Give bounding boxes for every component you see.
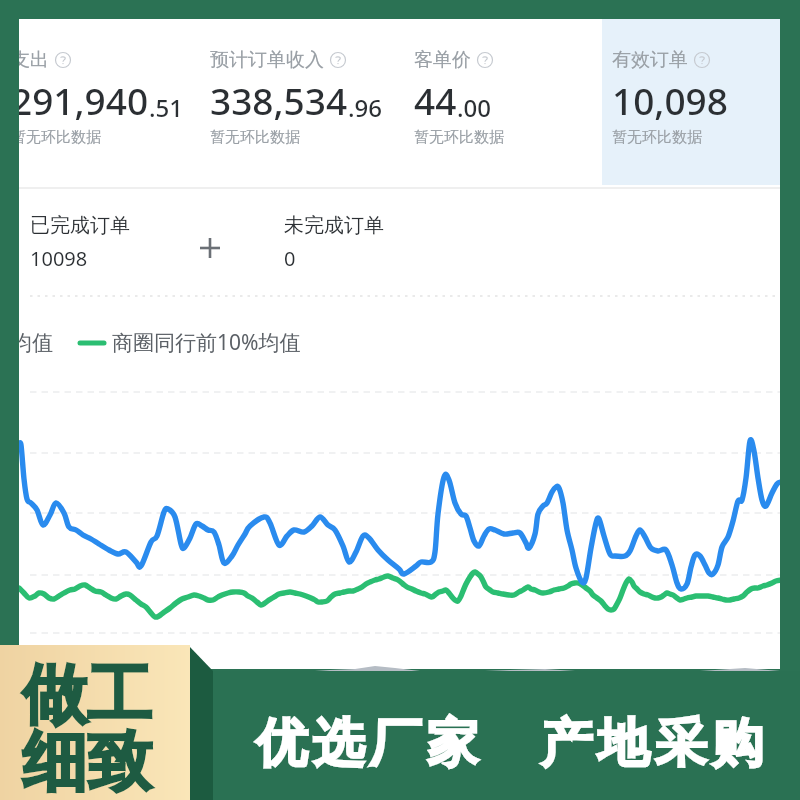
staticText: 338,534 [210,75,348,125]
other: More info [329,51,347,69]
button[interactable]: 均值 [19,328,301,357]
staticText: 10098 [30,245,88,272]
button[interactable]: 优选厂家 产地采购 [213,671,800,800]
staticText: 291,940 [19,75,149,125]
staticText: 44 [414,75,457,125]
staticText: 未完成订单 [284,213,384,238]
other: More info [476,51,494,69]
staticText: .00 [457,91,491,124]
staticText: 暂无环比数据 [414,128,504,147]
staticText: .51 [149,91,183,124]
button[interactable]: 已完成订单 [30,213,130,272]
staticText: 已完成订单 [30,213,130,238]
staticText: 暂无环比数据 [210,128,300,147]
staticText: 支出 [19,48,49,72]
staticText: 暂无环比数据 [19,128,101,147]
staticText: 商圈同行前10%均值 [112,328,301,357]
staticText: 有效订单 [612,48,688,72]
button[interactable]: 预计订单收入 [210,48,382,147]
staticText: 均值 [19,330,53,356]
button[interactable]: 客单价 [414,48,504,147]
staticText: 10,098 [612,75,728,125]
button[interactable]: 未完成订单 [284,213,384,272]
other: Sum [195,233,225,263]
staticText: 做工 [22,654,152,736]
other: More info [54,51,72,69]
staticText: 细致 [22,721,152,800]
staticText: 0 [284,245,296,272]
staticText: 优选厂家 产地采购 [253,705,766,776]
button[interactable]: 有效订单 [612,48,728,147]
staticText: .96 [348,91,382,124]
button[interactable]: 支出 [19,48,183,147]
other: More info [693,51,711,69]
staticText: 预计订单收入 [210,48,324,72]
staticText: 客单价 [414,48,471,72]
button[interactable]: 做工 [0,645,190,800]
staticText: 暂无环比数据 [612,128,702,147]
